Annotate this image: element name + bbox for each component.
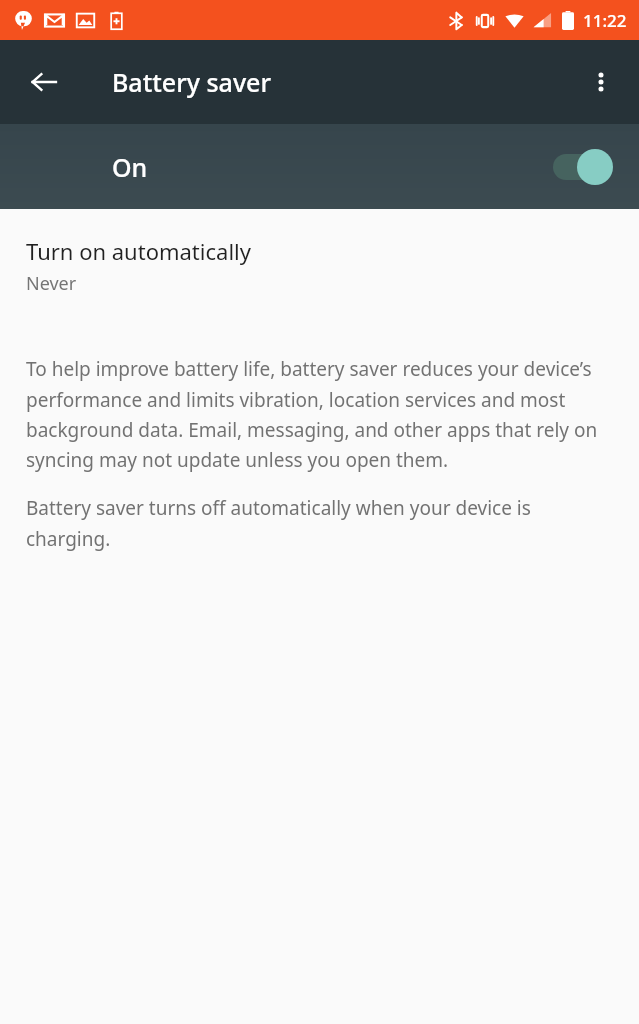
- staticText: Battery saver turns off automatically wh…: [26, 495, 613, 551]
- button[interactable]: On: [0, 124, 639, 209]
- button[interactable]: Back: [14, 52, 74, 112]
- staticText: On: [112, 150, 148, 184]
- staticText: 11:22: [583, 9, 627, 32]
- button[interactable]: More options: [573, 54, 629, 110]
- button[interactable]: Turn on automatically: [0, 210, 639, 310]
- staticText: Never: [26, 271, 77, 296]
- staticText: Battery saver: [112, 65, 271, 99]
- staticText: To help improve battery life, battery sa…: [26, 356, 613, 472]
- staticText: Turn on automatically: [26, 236, 251, 266]
